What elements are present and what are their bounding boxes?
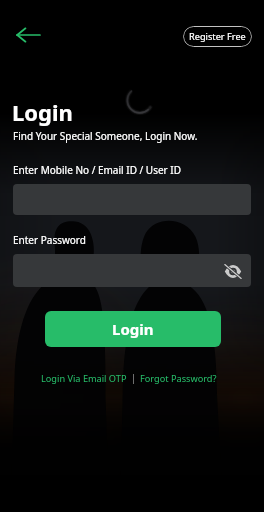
staticText: Register Free bbox=[189, 30, 246, 43]
staticText: Find Your Special Someone, Login Now. bbox=[13, 129, 198, 143]
button[interactable]: Login bbox=[45, 311, 221, 347]
button[interactable]: Login Via Email OTP bbox=[39, 370, 129, 387]
staticText: Enter Password bbox=[13, 233, 86, 247]
button[interactable]: Register Free bbox=[183, 26, 252, 47]
button[interactable]: Back bbox=[15, 23, 41, 47]
button[interactable]: Toggle password visibility bbox=[13, 254, 251, 287]
staticText: Login Via Email OTP bbox=[41, 372, 127, 385]
button[interactable]: Toggle password visibility bbox=[221, 259, 245, 283]
button[interactable]: Forgot Password? bbox=[138, 370, 219, 387]
staticText: Forgot Password? bbox=[140, 372, 217, 385]
staticText: Login bbox=[112, 319, 154, 339]
staticText: Login bbox=[12, 97, 73, 127]
staticText: Enter Mobile No / Email ID / User ID bbox=[13, 163, 182, 177]
